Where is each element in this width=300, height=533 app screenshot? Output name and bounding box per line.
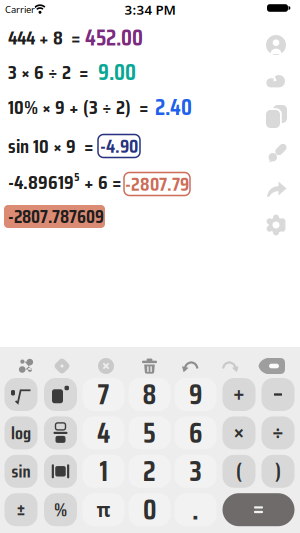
staticText: 3:34 PM (124, 1, 175, 18)
staticText: 2.40 (155, 89, 192, 125)
staticText: 452.00 (85, 20, 143, 55)
staticText: ) (275, 454, 281, 488)
button[interactable]: sin (4, 455, 37, 488)
staticText: -4.89619⁵ + 6 = (8, 166, 122, 198)
staticText: 4 (97, 411, 110, 455)
button[interactable]: ) (261, 455, 294, 488)
button[interactable]: ± (4, 493, 37, 526)
button[interactable]: Power (44, 378, 77, 411)
button[interactable]: Undo (182, 359, 198, 374)
staticText: ( (236, 454, 242, 488)
staticText: + (233, 382, 244, 407)
button[interactable]: log (4, 416, 37, 449)
staticText: 9.00 (98, 54, 136, 90)
staticText: . (192, 488, 199, 532)
staticText: log (11, 419, 31, 447)
staticText: 0 (143, 488, 156, 532)
button[interactable]: + (222, 378, 255, 411)
button[interactable]: 1 (82, 455, 124, 488)
staticText: 3 × 6 ÷ 2 = (8, 56, 89, 88)
button[interactable]: 0 (128, 493, 170, 526)
staticText: sin 10 × 9 = (8, 130, 94, 162)
staticText: -2807.787609 (8, 202, 104, 231)
staticText: 3 (189, 449, 201, 493)
staticText: % (54, 495, 67, 524)
button[interactable]: Redo (222, 359, 238, 374)
button[interactable]: Share (266, 181, 287, 197)
button[interactable]: Minus (261, 378, 294, 411)
staticText: 9 (189, 372, 202, 417)
staticText: 6 (189, 411, 202, 455)
button[interactable]: × (222, 416, 255, 449)
staticText: 8 (142, 372, 156, 417)
button[interactable]: π (82, 493, 124, 526)
staticText: Carrier (5, 3, 35, 16)
button[interactable]: Settings (265, 214, 286, 235)
button[interactable]: Root (4, 378, 37, 411)
button[interactable]: Equals (222, 493, 294, 526)
staticText: -2807.79 (125, 169, 189, 199)
button[interactable]: ( (222, 455, 255, 488)
button[interactable]: Sync (266, 72, 285, 88)
button[interactable]: Tag (54, 358, 70, 374)
button[interactable]: 4 (82, 416, 124, 449)
button[interactable]: Copy (266, 105, 287, 128)
staticText: sin (11, 457, 30, 485)
staticText: -4.90 (100, 131, 138, 161)
staticText: ± (16, 495, 25, 524)
staticText: × (233, 420, 244, 445)
button[interactable]: . (174, 493, 216, 526)
staticText: 10% × 9 + (3 ÷ 2) = (8, 91, 149, 123)
button[interactable]: 7 (82, 378, 124, 411)
button[interactable]: Delete (142, 358, 157, 374)
button[interactable]: 2 (128, 455, 170, 488)
button[interactable]: 6 (174, 416, 216, 449)
staticText: 2 (143, 449, 156, 493)
button[interactable]: Themes (266, 144, 286, 164)
button[interactable]: Account (266, 35, 286, 55)
staticText: 1 (99, 449, 107, 493)
button[interactable]: Keyboards (18, 358, 34, 374)
staticText: 7 (97, 372, 109, 417)
button[interactable]: Clear (98, 358, 114, 374)
button[interactable]: 5 (128, 416, 170, 449)
staticText: 5 (143, 411, 156, 455)
button[interactable]: Backspace (258, 358, 285, 374)
button[interactable]: Fraction (44, 416, 77, 449)
button[interactable]: Parentheses (44, 455, 77, 488)
staticText: 444 + 8 = (8, 22, 81, 53)
button[interactable]: 8 (128, 378, 170, 411)
staticText: ÷ (272, 420, 283, 445)
button[interactable]: % (44, 493, 77, 526)
button[interactable]: 3 (174, 455, 216, 488)
staticText: π (96, 497, 110, 522)
button[interactable]: ÷ (261, 416, 294, 449)
button[interactable]: 9 (174, 378, 216, 411)
